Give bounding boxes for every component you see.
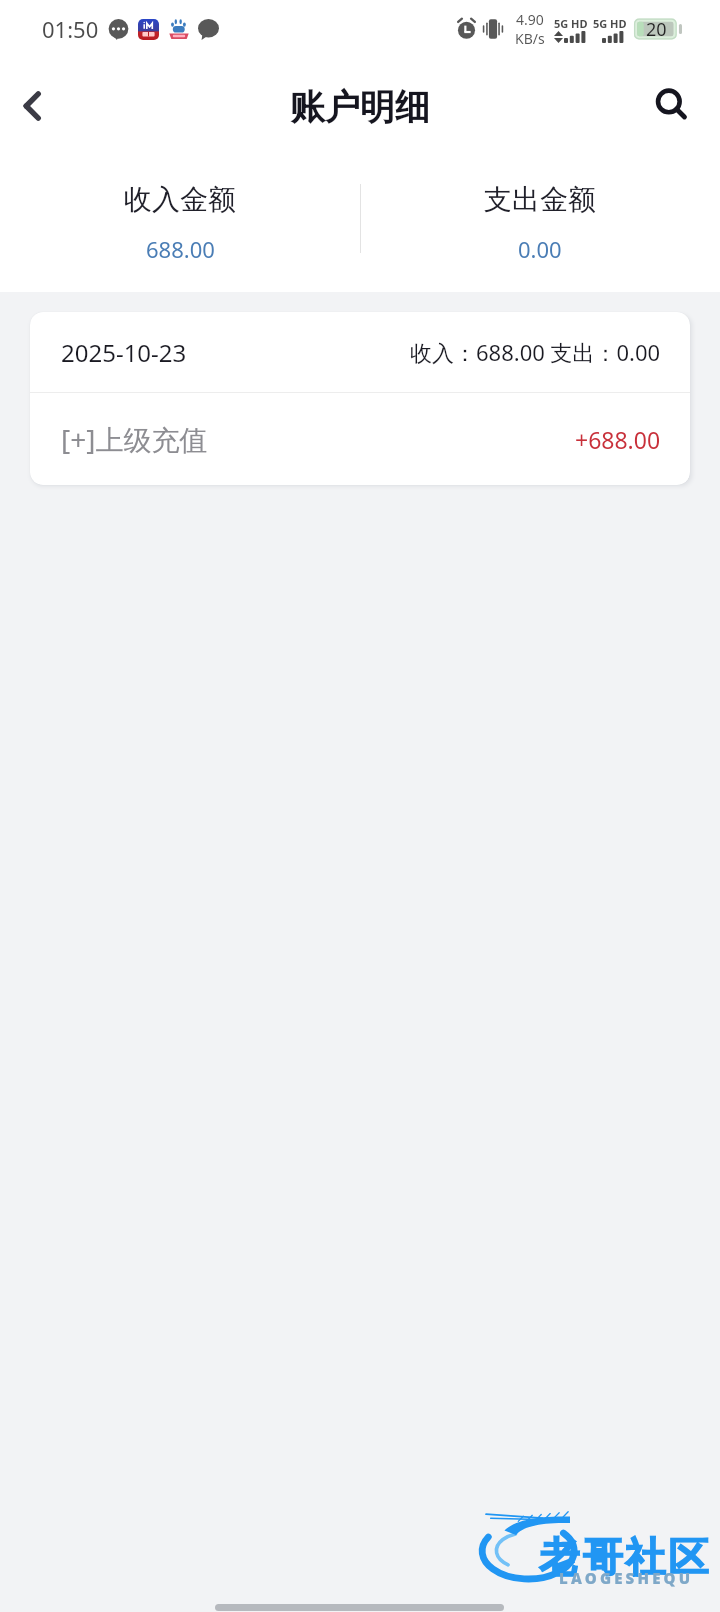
staticText: 01:50: [42, 14, 99, 44]
staticText: 收入金额: [124, 182, 236, 217]
button[interactable]: Back: [0, 70, 69, 142]
staticText: 老哥社区: [538, 1532, 710, 1582]
staticText: 688.00: [146, 234, 215, 264]
staticText: 支出金额: [484, 182, 596, 217]
staticText: 账户明细: [290, 85, 430, 129]
staticText: 4.90: [516, 10, 544, 29]
staticText: 收入：688.00 支出：0.00: [410, 337, 661, 367]
staticText: 5G HD: [554, 16, 588, 31]
button[interactable]: 2025-10-23: [30, 312, 690, 485]
staticText: 20: [646, 17, 667, 42]
staticText: 0.00: [518, 234, 562, 264]
staticText: +688.00: [575, 424, 661, 455]
staticText: 2025-10-23: [61, 336, 187, 369]
staticText: KB/s: [515, 29, 545, 48]
staticText: LAOGESHEQU: [559, 1568, 694, 1588]
staticText: 5G HD: [593, 16, 627, 31]
button[interactable]: Search: [635, 69, 707, 141]
staticText: [+]上级充值: [61, 420, 208, 458]
